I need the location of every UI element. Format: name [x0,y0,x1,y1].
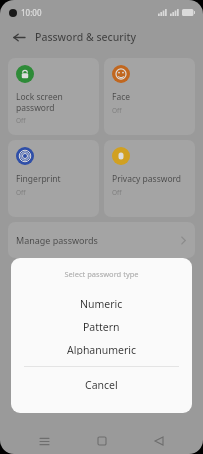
staticText: Off [16,116,26,125]
button[interactable]: Manage passwords [8,222,195,258]
staticText: Pattern [83,320,120,332]
button[interactable]: Alphanumeric [11,343,192,355]
staticText: Off [112,188,122,197]
staticText: Off [16,188,26,197]
staticText: Privacy password [112,173,182,185]
button[interactable]: Lock screen password [8,58,99,135]
button[interactable]: Back [9,27,29,47]
staticText: Numeric [80,297,123,309]
staticText: Alphanumeric [67,343,137,355]
button[interactable]: Privacy password [104,140,195,217]
button[interactable]: Recents [31,428,57,454]
staticText: Select password type [11,269,192,279]
button[interactable]: Pattern [11,320,192,332]
button[interactable]: Back [146,428,172,454]
staticText: Face [112,91,131,103]
staticText: 10:00 [21,7,42,18]
button[interactable]: Cancel [11,378,192,390]
button[interactable]: Home [89,428,115,454]
staticText: Off [112,106,122,115]
button[interactable]: Fingerprint [8,140,99,217]
staticText: Manage passwords [16,234,98,246]
button[interactable]: Numeric [11,297,192,309]
staticText: Fingerprint [16,173,61,185]
button[interactable]: Face [104,58,195,135]
staticText: Password & security [35,30,137,44]
staticText: Lock screen password [16,91,63,113]
staticText: Cancel [85,378,118,390]
